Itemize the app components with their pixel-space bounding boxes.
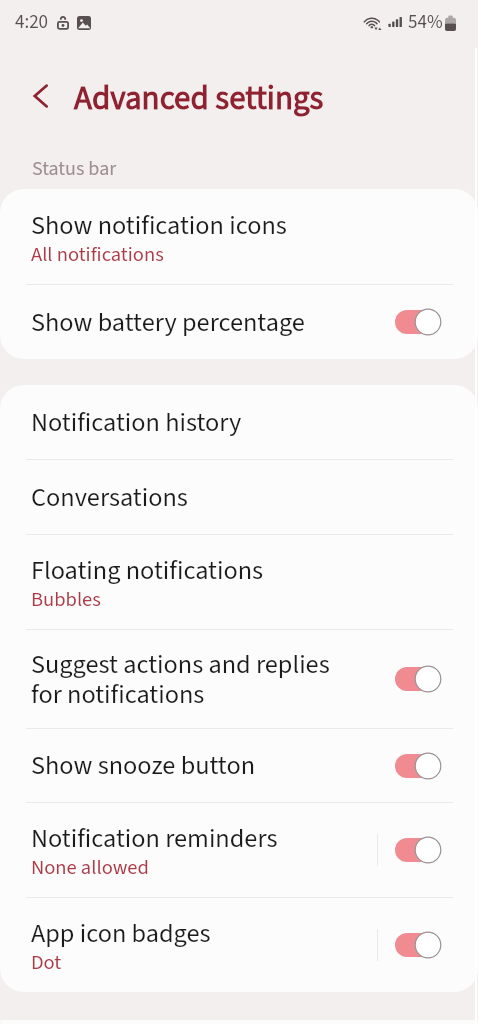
button[interactable]: Suggest actions and replies for notifica… [0,630,478,728]
staticText: Status bar [32,155,117,183]
staticText: None allowed [31,853,149,882]
staticText: Floating notifications [31,552,264,589]
button[interactable]: Floating notifications [0,535,478,629]
button[interactable]: Toggle [395,663,442,695]
staticText: Conversations [31,479,188,516]
button[interactable]: Toggle [395,750,442,782]
staticText: Dot [31,948,62,977]
staticText: 4:20 [15,9,49,36]
staticText: Bubbles [31,585,101,614]
staticText: Suggest actions and replies for notifica… [31,646,330,713]
staticText: Notification reminders [31,820,278,857]
staticText: App icon badges [31,915,211,952]
button[interactable]: App icon badges [0,898,478,992]
button[interactable]: Show battery percentage [0,285,478,359]
staticText: Notification history [31,404,242,441]
staticText: Advanced settings [74,75,324,122]
staticText: Show notification icons [31,207,287,244]
button[interactable]: Toggle [395,929,442,961]
staticText: Show snooze button [31,747,256,784]
button[interactable]: Conversations [0,460,478,534]
button[interactable]: Show notification icons [0,189,478,284]
staticText: All notifications [31,240,164,269]
button[interactable]: Notification reminders [0,803,478,897]
button[interactable]: Show snooze button [0,729,478,802]
button[interactable]: Notification history [0,385,478,459]
button[interactable]: Back [24,79,57,112]
staticText: Show battery percentage [31,304,305,341]
button[interactable]: Toggle [395,306,442,338]
button[interactable]: Toggle [395,834,442,866]
staticText: 54% [408,9,443,36]
